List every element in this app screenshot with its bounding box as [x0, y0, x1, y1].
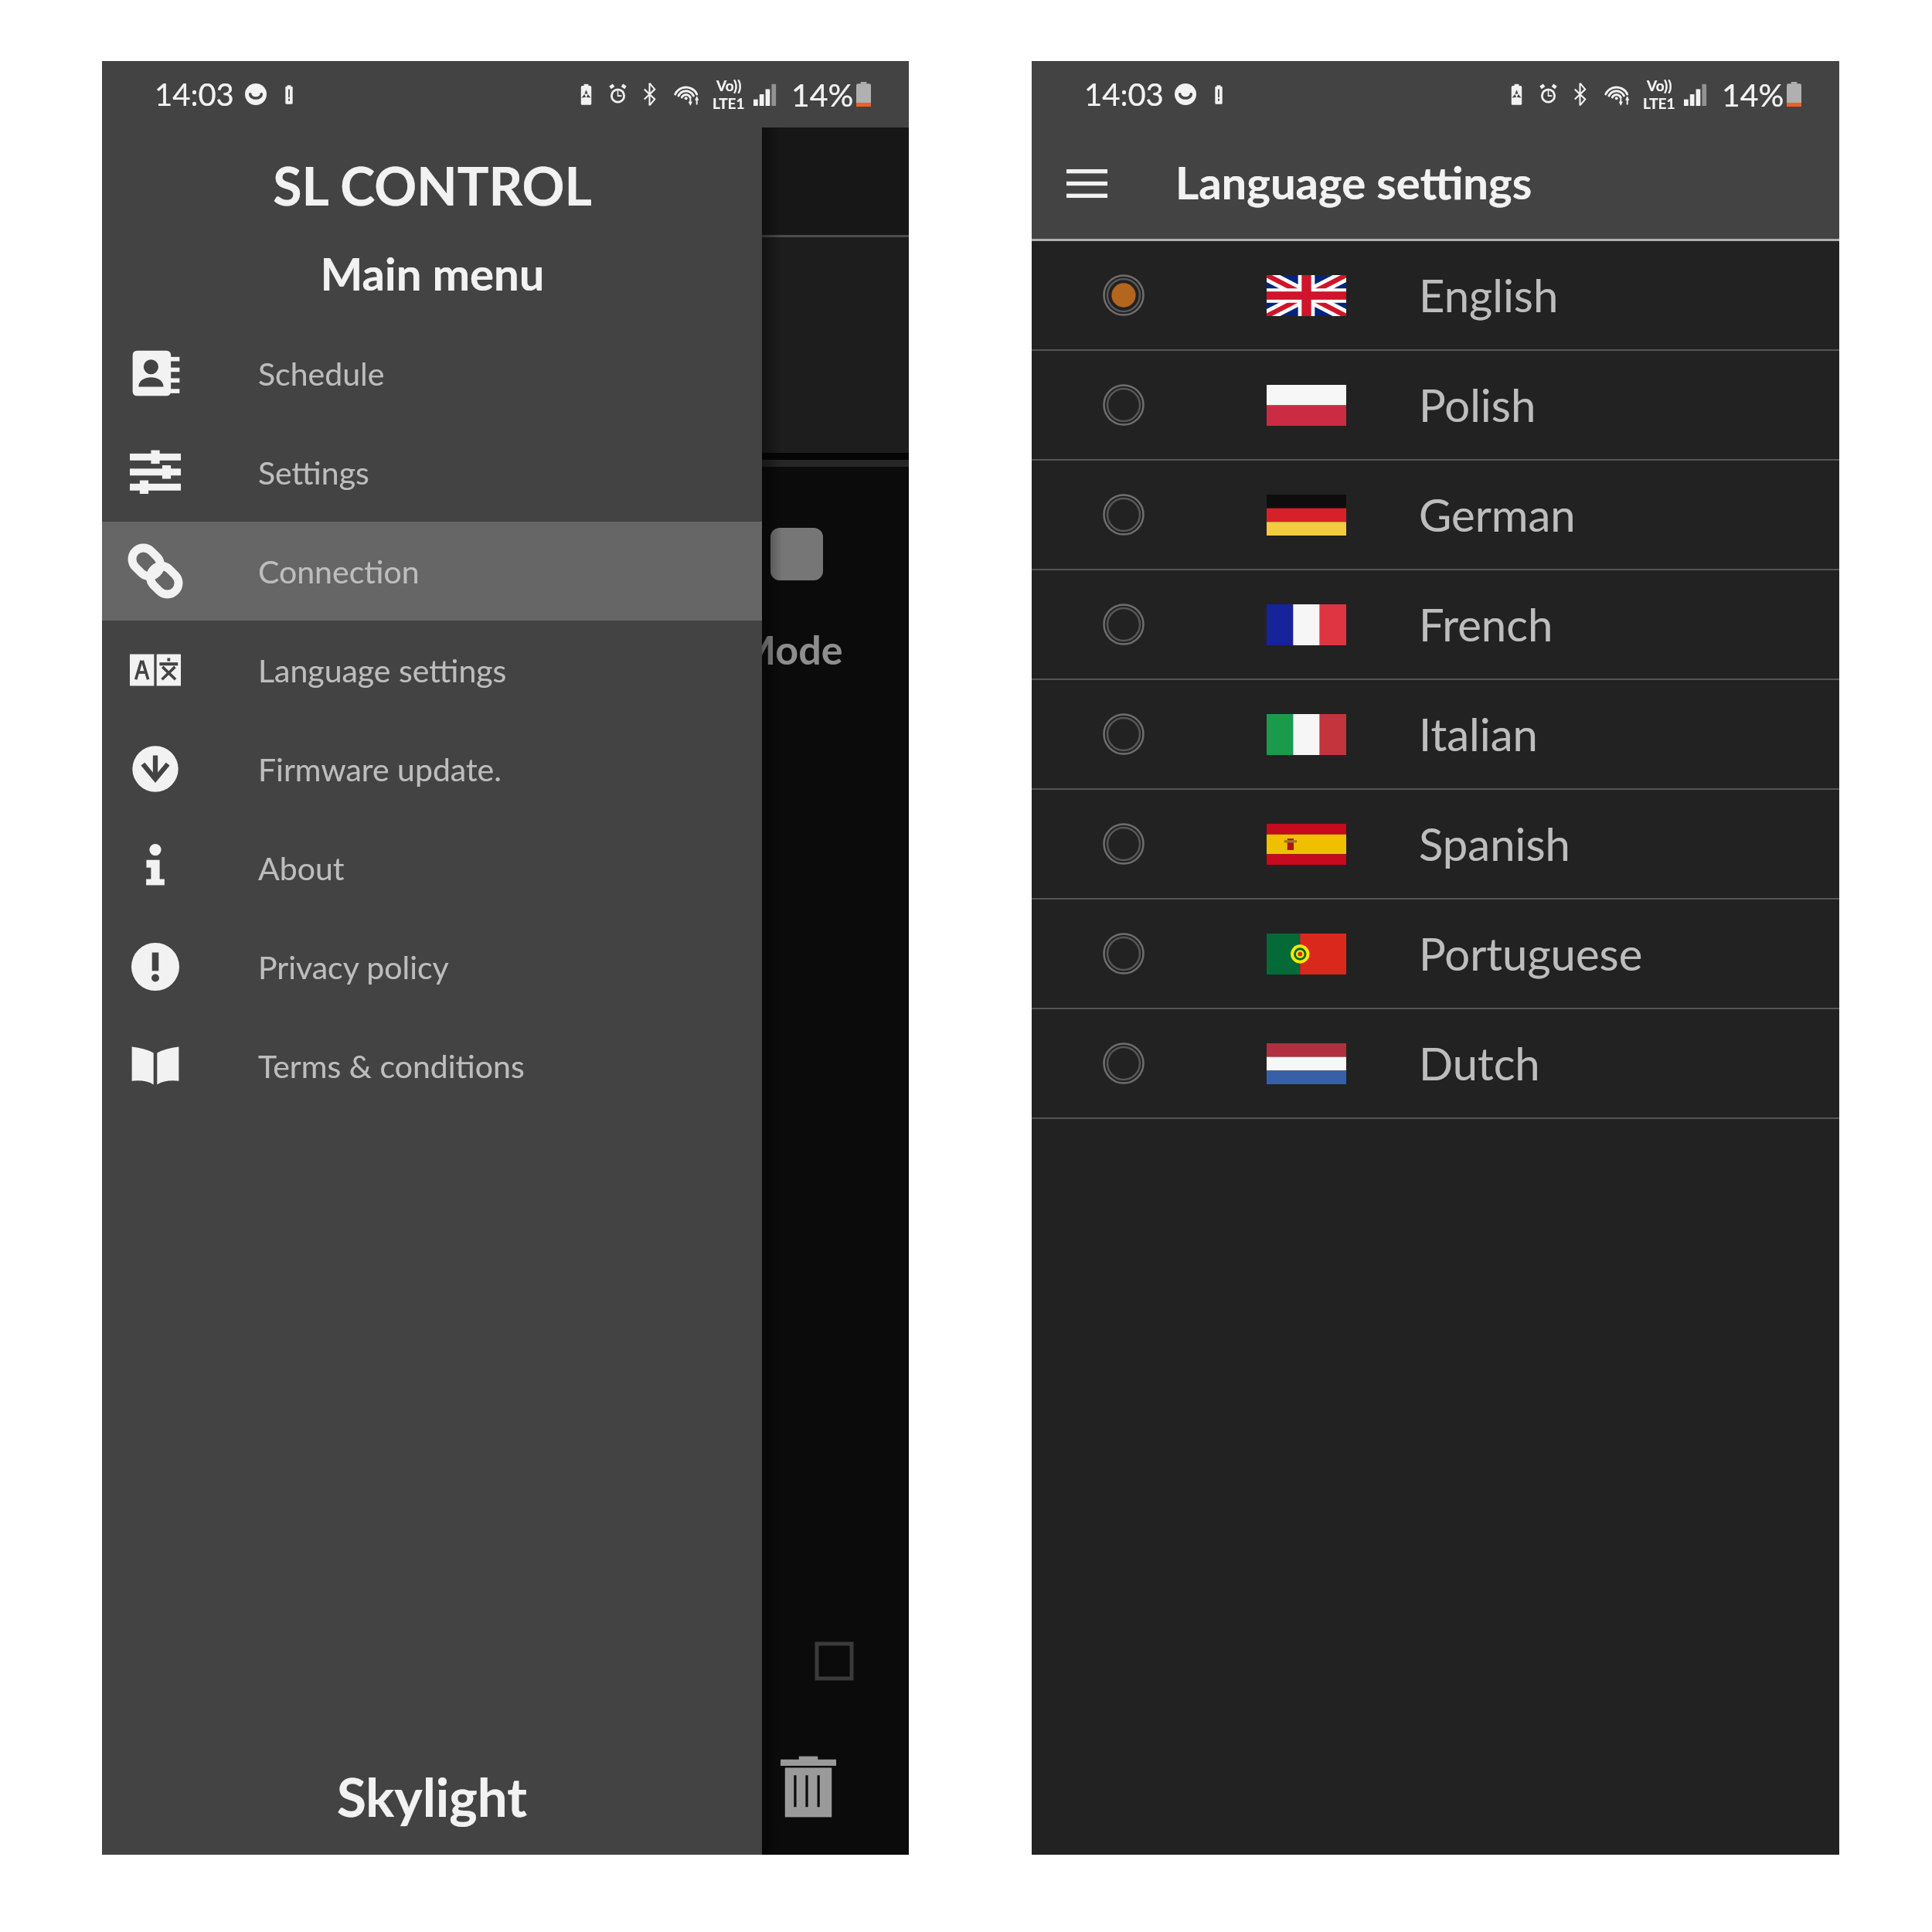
- button[interactable]: Portuguese: [1032, 900, 1839, 1008]
- staticText: Vo)): [1647, 77, 1672, 94]
- staticText: Connection: [258, 553, 420, 590]
- staticText: Language settings: [1175, 155, 1532, 209]
- button[interactable]: German: [1032, 461, 1839, 569]
- staticText: 14%: [791, 76, 854, 114]
- button[interactable]: Privacy policy: [102, 917, 762, 1016]
- staticText: English: [1419, 268, 1559, 322]
- button[interactable]: Firmware update.: [102, 719, 762, 818]
- staticText: SL CONTROL: [273, 154, 592, 217]
- staticText: Polish: [1419, 378, 1536, 432]
- staticText: Language settings: [258, 651, 507, 689]
- staticText: German: [1419, 488, 1576, 542]
- staticText: About: [258, 849, 345, 887]
- staticText: Settings: [258, 454, 369, 492]
- button[interactable]: Spanish: [1032, 790, 1839, 898]
- button[interactable]: About: [102, 818, 762, 917]
- staticText: Spanish: [1419, 817, 1570, 871]
- staticText: Terms & conditions: [258, 1047, 525, 1085]
- button[interactable]: Terms & conditions: [102, 1016, 762, 1115]
- button[interactable]: Connection: [102, 522, 762, 621]
- button[interactable]: French: [1032, 570, 1839, 679]
- staticText: Italian: [1419, 707, 1538, 761]
- staticText: Skylight: [337, 1764, 527, 1828]
- button[interactable]: Polish: [1032, 351, 1839, 459]
- button[interactable]: Settings: [102, 423, 762, 522]
- button[interactable]: Language settings: [102, 621, 762, 719]
- staticText: LTE1: [1643, 94, 1675, 112]
- staticText: 14:03: [155, 76, 234, 113]
- staticText: Schedule: [258, 355, 385, 393]
- staticText: Vo)): [716, 77, 742, 94]
- button[interactable]: Schedule: [102, 324, 762, 423]
- button[interactable]: English: [1032, 241, 1839, 349]
- button[interactable]: Open navigation menu: [1056, 153, 1117, 213]
- staticText: Dutch: [1419, 1036, 1540, 1090]
- button[interactable]: Delete: [781, 1755, 836, 1818]
- button[interactable]: Italian: [1032, 680, 1839, 788]
- staticText: French: [1419, 597, 1553, 651]
- button[interactable]: Select all: [817, 1644, 852, 1679]
- staticText: LTE1: [713, 94, 745, 112]
- staticText: Main menu: [320, 247, 545, 301]
- staticText: Mode: [738, 625, 843, 673]
- staticText: 14:03: [1084, 76, 1164, 113]
- staticText: Firmware update.: [258, 750, 502, 788]
- staticText: 14%: [1722, 76, 1784, 114]
- button[interactable]: Dutch: [1032, 1009, 1839, 1117]
- staticText: Privacy policy: [258, 948, 449, 986]
- staticText: Portuguese: [1419, 927, 1643, 981]
